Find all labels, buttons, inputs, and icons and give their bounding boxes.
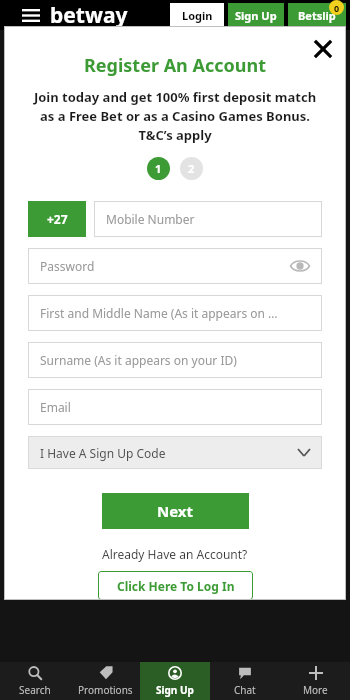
button[interactable]: Mobile Number [94, 201, 322, 237]
staticText: Join today and get 100% first deposit ma… [28, 88, 322, 144]
staticText: Sign Up [156, 683, 194, 697]
button[interactable]: First and Middle Name (As it appears on … [28, 295, 322, 331]
staticText: Next [157, 501, 194, 521]
staticText: +27 [47, 211, 68, 227]
staticText: Already Have an Account? [102, 546, 248, 562]
staticText: Mobile Number [106, 211, 195, 227]
staticText: Register An Account [84, 53, 266, 78]
staticText: Promotions [78, 683, 133, 697]
staticText: Click Here To Log In [117, 578, 235, 594]
button[interactable]: More [280, 662, 350, 700]
button[interactable]: Betslip [288, 3, 346, 27]
button[interactable]: Close [310, 36, 336, 62]
staticText: More [303, 683, 328, 697]
staticText: I Have A Sign Up Code [40, 445, 166, 461]
button[interactable]: Menu [18, 2, 44, 28]
button[interactable]: 2 [180, 157, 203, 180]
staticText: 1 [155, 161, 162, 176]
button[interactable]: Next [102, 493, 249, 529]
button[interactable]: +27 [28, 201, 86, 237]
staticText: Betslip [298, 8, 336, 23]
button[interactable]: Chat [210, 662, 280, 700]
staticText: 2 [188, 161, 195, 176]
button[interactable]: Password [28, 248, 322, 284]
staticText: Login [182, 8, 213, 23]
staticText: betway [50, 1, 128, 30]
staticText: Password [40, 258, 95, 274]
button[interactable]: Sign Up [228, 3, 284, 27]
staticText: 0 [334, 2, 340, 14]
button[interactable]: Surname (As it appears on your ID) [28, 342, 322, 378]
button[interactable]: 1 [147, 157, 170, 180]
button[interactable]: Search [0, 662, 70, 700]
staticText: Search [19, 683, 51, 697]
button[interactable]: I Have A Sign Up Code [28, 436, 322, 469]
button[interactable]: Click Here To Log In [98, 571, 253, 600]
staticText: Sign Up [235, 8, 277, 23]
button[interactable]: Sign Up [140, 662, 210, 700]
button[interactable]: Login [170, 3, 224, 27]
staticText: Email [40, 399, 71, 415]
button[interactable]: Email [28, 389, 322, 425]
button[interactable]: Promotions [70, 662, 140, 700]
staticText: Chat [234, 683, 256, 697]
staticText: Surname (As it appears on your ID) [40, 352, 237, 368]
staticText: First and Middle Name (As it appears on … [40, 305, 278, 321]
